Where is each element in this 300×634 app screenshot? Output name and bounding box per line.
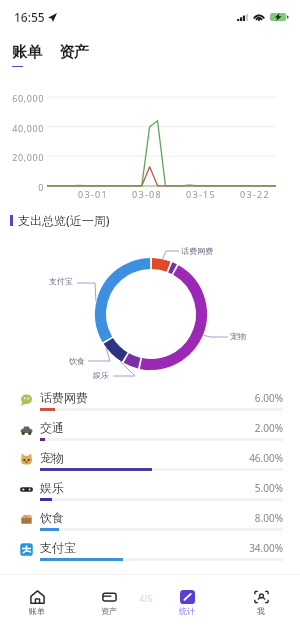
staticText: 宠物 — [230, 331, 246, 341]
staticText: 40,000 — [0, 122, 44, 134]
staticText: 资产 — [59, 43, 89, 62]
staticText: 03-15 — [186, 188, 216, 200]
button[interactable]: 我 — [239, 584, 283, 622]
staticText: 03-01 — [78, 188, 108, 200]
button[interactable]: 账单 — [8, 41, 46, 69]
button[interactable]: 账单 — [15, 584, 59, 622]
staticText: 0 — [0, 181, 44, 193]
button[interactable]: 资产 — [55, 41, 93, 69]
staticText: 饮食 — [69, 356, 85, 366]
staticText: 交通 — [40, 420, 64, 435]
staticText: 话费网费 — [40, 390, 88, 405]
staticText: 46.00% — [0, 451, 283, 465]
button[interactable]: 宠物 — [0, 445, 300, 475]
staticText: 03-08 — [132, 188, 162, 200]
button[interactable]: 交通 — [0, 415, 300, 445]
staticText: 娱乐 — [93, 370, 109, 380]
staticText: 账单 — [29, 606, 45, 616]
staticText: 2.00% — [0, 421, 283, 435]
button[interactable]: 资产 — [87, 584, 131, 622]
staticText: 8.00% — [0, 511, 283, 525]
staticText: 资产 — [101, 606, 117, 616]
staticText: 5.00% — [0, 481, 283, 495]
button[interactable]: 话费网费 — [0, 385, 300, 415]
staticText: 20,000 — [0, 151, 44, 163]
staticText: 话费网费 — [181, 246, 213, 256]
button[interactable]: 饮食 — [0, 505, 300, 535]
staticText: 03-22 — [240, 188, 270, 200]
staticText: 60,000 — [0, 92, 44, 104]
staticText: 我 — [257, 606, 265, 616]
staticText: 账单 — [12, 43, 42, 62]
staticText: 6.00% — [0, 391, 283, 405]
staticText: 34.00% — [0, 541, 283, 555]
staticText: 饮食 — [40, 510, 64, 525]
staticText: 支出总览(近一周) — [18, 212, 110, 228]
staticText: 娱乐 — [40, 480, 64, 495]
staticText: 统计 — [179, 606, 195, 616]
staticText: 支付宝 — [40, 540, 76, 555]
staticText: 4/6 — [139, 592, 153, 604]
staticText: 16:55 — [14, 9, 45, 25]
button[interactable]: 支付宝 — [0, 535, 300, 565]
button[interactable]: 娱乐 — [0, 475, 300, 505]
button[interactable]: 统计 — [165, 584, 209, 622]
staticText: 宠物 — [40, 450, 64, 465]
staticText: 支付宝 — [49, 276, 73, 286]
